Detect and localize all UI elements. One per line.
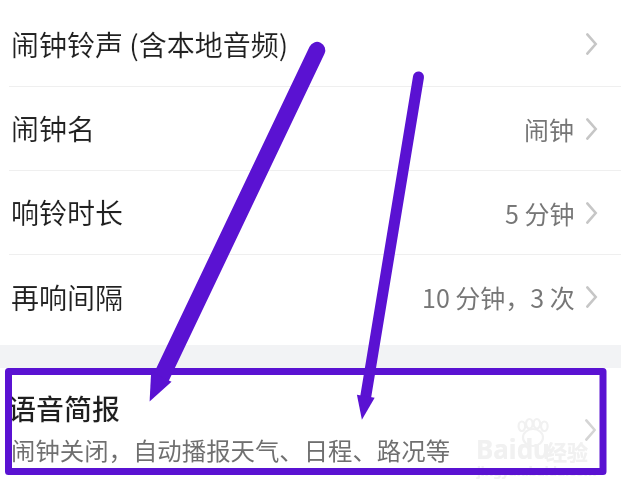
staticText: 闹钟关闭，自动播报天气、日程、路况等 (11, 432, 451, 467)
staticText: 闹钟铃声 (含本地音频) (11, 24, 289, 65)
staticText: 语音简报 (8, 388, 121, 429)
staticText: 5 分钟 (505, 195, 575, 231)
button[interactable]: 闹钟名 (0, 87, 621, 170)
button[interactable]: 再响间隔 (0, 255, 621, 345)
staticText: Baidu (476, 431, 550, 466)
staticText: 闹钟 (524, 111, 575, 147)
button[interactable]: 响铃时长 (0, 171, 621, 254)
button[interactable]: 闹钟铃声 (含本地音频) (0, 0, 621, 86)
staticText: 闹钟名 (11, 108, 96, 149)
staticText: 再响间隔 (11, 277, 124, 318)
button[interactable]: Baidu (0, 368, 621, 492)
staticText: 10 分钟，3 次 (422, 279, 575, 315)
staticText: 响铃时长 (11, 192, 124, 233)
staticText: 经验 (546, 436, 588, 466)
staticText: jingyan.baidu.com (477, 462, 597, 480)
